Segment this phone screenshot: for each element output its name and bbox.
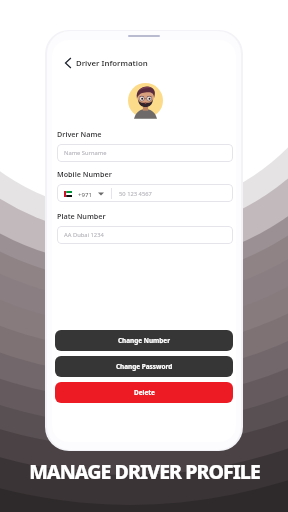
button[interactable]: Back [60,55,76,71]
staticText: Plate Number [57,211,106,221]
staticText: Delete [134,388,155,397]
button[interactable]: Back [60,54,148,72]
staticText: AA Dubai 1234 [64,231,104,239]
staticText: Driver Name [57,129,102,139]
staticText: Change Password [116,362,173,371]
staticText: Name Surname [64,149,107,157]
staticText: +971 [78,190,92,198]
staticText: Mobile Number [57,169,112,179]
staticText: MANAGE DRIVER PROFILE [29,458,260,485]
staticText: Driver Information [76,58,148,69]
button[interactable]: Name Surname [57,144,233,162]
button[interactable]: Delete [55,382,233,403]
button[interactable]: Change Number [55,330,233,351]
button[interactable]: +971 [57,184,233,202]
staticText: 50 123 4567 [119,190,152,198]
button[interactable]: Change Password [55,356,233,377]
staticText: Change Number [118,336,171,345]
button[interactable]: AA Dubai 1234 [57,226,233,244]
